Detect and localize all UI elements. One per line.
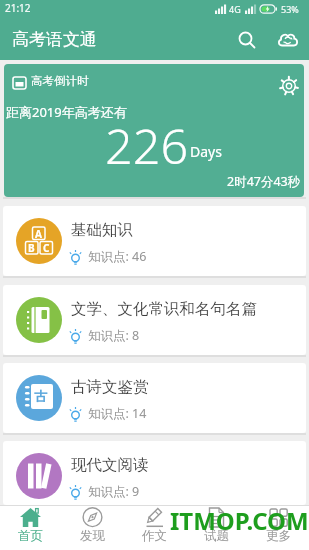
button[interactable]: 试题	[185, 506, 247, 550]
staticText: 试题	[204, 528, 229, 544]
staticText: 古	[34, 388, 47, 404]
staticText: 知识点: 46	[88, 248, 147, 265]
staticText: 2时47分43秒	[227, 173, 301, 190]
button[interactable]: 发现	[61, 506, 123, 550]
button[interactable]: 首页	[0, 506, 61, 550]
staticText: 文学、文化常识和名句名篇	[71, 299, 257, 319]
staticText: 53%	[281, 3, 299, 15]
button[interactable]: A	[3, 206, 306, 276]
button[interactable]: 高考倒计时	[4, 64, 304, 197]
staticText: A	[35, 227, 42, 241]
staticText: 更多	[266, 528, 291, 544]
staticText: 现代文阅读	[71, 455, 149, 475]
staticText: 知识点: 9	[88, 483, 140, 500]
staticText: Days	[190, 142, 222, 161]
button[interactable]	[278, 75, 300, 97]
staticText: 4G	[229, 3, 241, 15]
staticText: B	[28, 241, 35, 255]
staticText: C	[43, 241, 50, 255]
staticText: 首页	[18, 528, 43, 544]
button[interactable]: 古	[3, 363, 306, 433]
staticText: 知识点: 8	[88, 327, 140, 344]
staticText: 基础知识	[71, 220, 133, 240]
staticText: 226	[105, 112, 189, 178]
staticText: 高考语文通	[12, 29, 97, 50]
button[interactable]	[276, 27, 302, 53]
staticText: 距离2019年高考还有	[6, 103, 127, 121]
button[interactable]: 文学、文化常识和名句名篇	[3, 285, 306, 355]
staticText: 古诗文鉴赏	[71, 377, 149, 397]
staticText: 作文	[142, 528, 167, 544]
button[interactable]: 现代文阅读	[3, 441, 306, 505]
staticText: 21:12	[5, 1, 31, 15]
staticText: ITMOP.COM	[170, 504, 309, 537]
button[interactable]	[235, 28, 259, 52]
button[interactable]: 更多	[247, 506, 309, 550]
staticText: 发现	[80, 528, 105, 544]
staticText: 知识点: 14	[88, 405, 147, 422]
button[interactable]: 作文	[123, 506, 185, 550]
staticText: 高考倒计时	[31, 74, 89, 88]
